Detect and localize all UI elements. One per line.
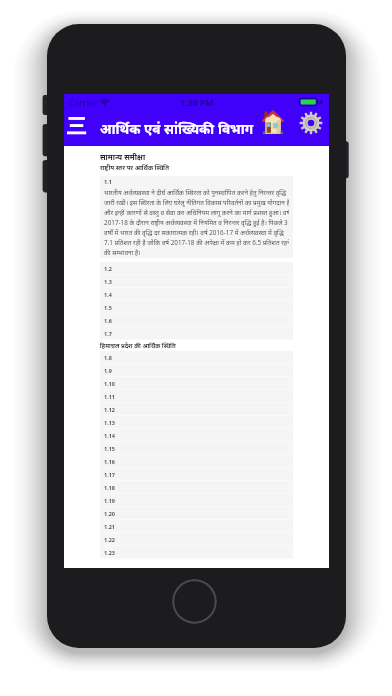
button[interactable]: 1.15 [100,442,293,455]
button[interactable]: 1.6 [100,314,293,327]
button[interactable]: 1.11 [100,390,293,403]
button[interactable]: 1.4 [100,288,293,301]
staticText: 2017-18 के दौरान राष्ट्रीय अर्थव्यवस्था … [104,218,288,227]
button[interactable]: 1.12 [100,403,293,416]
button[interactable]: 1.8 [100,351,293,364]
button[interactable]: 1.13 [100,416,293,429]
staticText: 1.10 [104,380,115,387]
staticText: 1.20 [104,510,115,517]
button[interactable]: 1.3 [100,275,293,288]
button[interactable]: 1.10 [100,377,293,390]
staticText: जारी रखी। इस स्थिरता के लिए घरेलू नीतिगत… [104,198,289,207]
button[interactable]: 1.19 [100,494,293,507]
staticText: 1.15 [104,445,115,452]
staticText: हिमाचल प्रदेश की आर्थिक स्थिति [100,342,293,350]
button[interactable]: 1.9 [100,364,293,377]
staticText: राष्ट्रीय स्तर पर आर्थिक स्थिति [100,163,169,171]
staticText: 1.4 [104,291,112,298]
staticText: 1.9 [104,367,112,374]
staticText: 1.8 [104,354,112,361]
button[interactable]: 1.5 [100,301,293,314]
staticText: 1:30 PM [180,97,214,107]
staticText: 1.2 [104,265,112,272]
staticText: भारतीय अर्थव्यवस्था ने दीर्घ आर्थिक स्थि… [104,188,286,197]
staticText: 1.11 [104,393,115,400]
button[interactable]: 1.22 [100,533,293,546]
staticText: वर्षों में भारत की वृद्धि दर सकारात्मक र… [104,228,284,237]
button[interactable]: 1.20 [100,507,293,520]
staticText: 1.5 [104,304,112,311]
button[interactable]: 1.18 [100,481,293,494]
button[interactable]: 1.21 [100,520,293,533]
staticText: आर्थिक एवं सांख्यिकी विभाग [100,119,254,138]
staticText: 1.7 [104,330,112,337]
staticText: 1.22 [104,536,115,543]
button[interactable]: Settings [297,109,325,137]
button[interactable]: 1.1 [100,176,293,186]
staticText: 1.19 [104,497,115,504]
staticText: और इन्हीं कारणों से वस्तु व सेवा कर अधिन… [104,208,289,217]
button[interactable]: 1.2 [100,262,293,275]
button[interactable]: 1.7 [100,327,293,340]
staticText: Carrier [69,97,98,107]
staticText: 1.21 [104,523,115,530]
staticText: 1.3 [104,278,112,285]
staticText: 1.14 [104,432,115,439]
staticText: 1.16 [104,458,115,465]
staticText: 1.13 [104,419,115,426]
staticText: 1.6 [104,317,112,324]
staticText: 1.18 [104,484,115,491]
staticText: 1.12 [104,406,115,413]
button[interactable]: 1.16 [100,455,293,468]
staticText: सामान्य समीक्षा [100,152,146,162]
button[interactable]: 1.14 [100,429,293,442]
staticText: 7.1 प्रतिशत रही है जोकि वर्ष 2017-18 की … [104,238,289,247]
button[interactable]: Home [260,109,286,135]
button[interactable]: 1.17 [100,468,293,481]
staticText: 1.17 [104,471,115,478]
button[interactable]: 1.23 [100,546,293,559]
staticText: 1.23 [104,549,115,556]
staticText: की सम्भावना है। [104,248,141,257]
button[interactable]: Open navigation menu [64,115,88,137]
staticText: 1.1 [104,178,112,185]
